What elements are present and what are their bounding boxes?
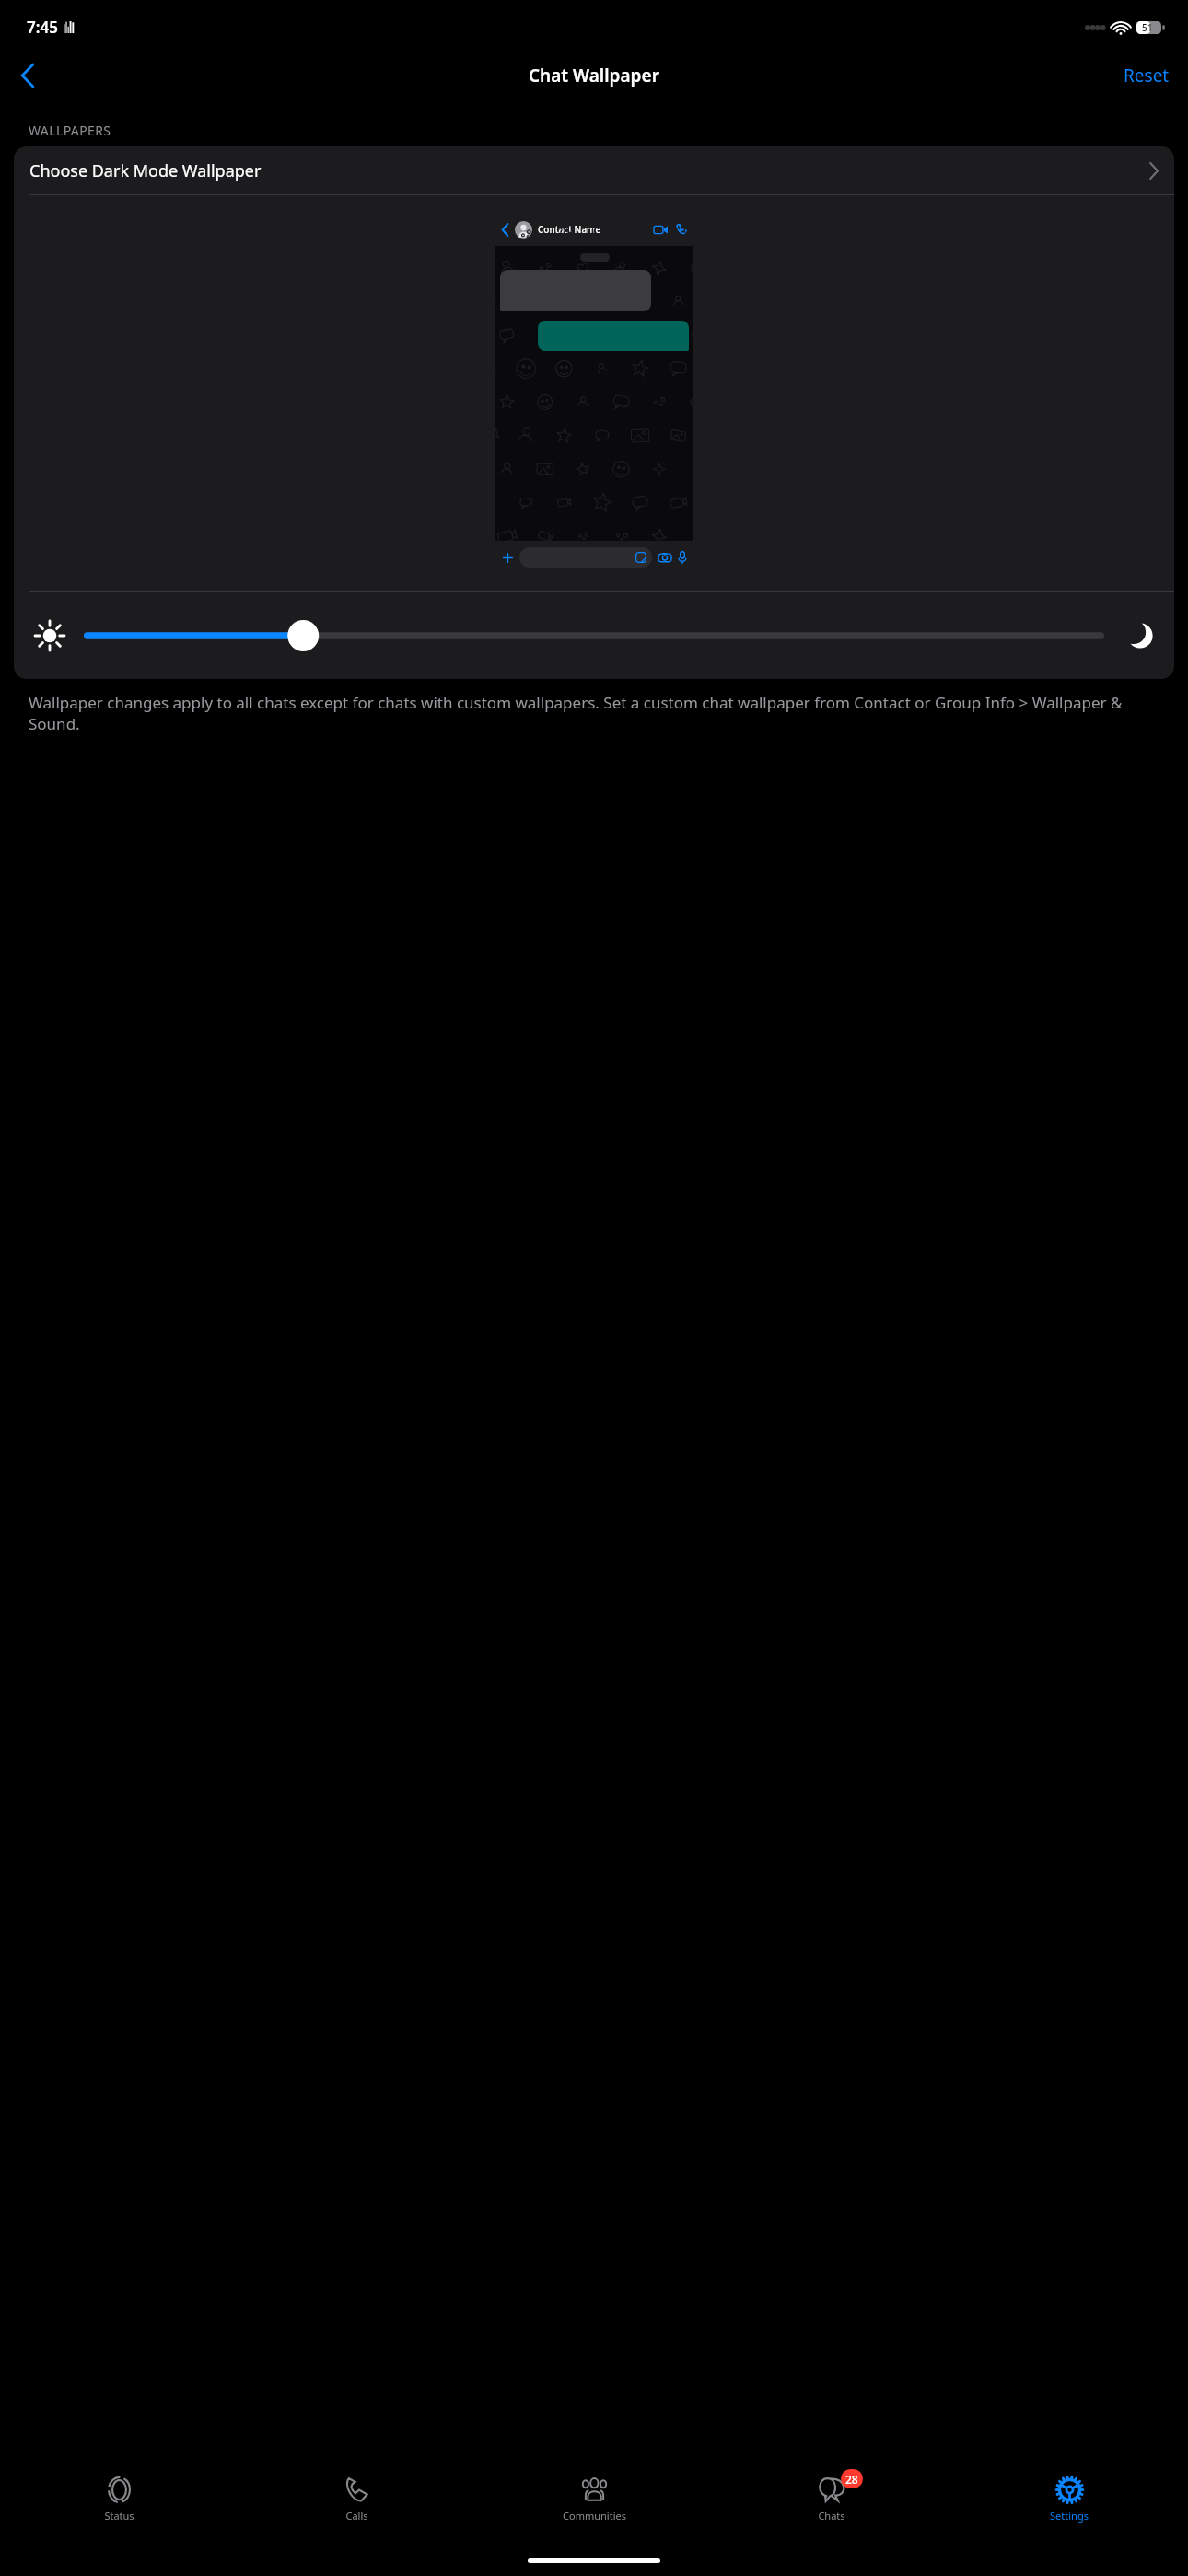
staticText: Status: [104, 2509, 134, 2523]
button[interactable]: Settings: [950, 2467, 1188, 2545]
staticText: Wallpaper changes apply to all chats exc…: [29, 692, 1162, 734]
button[interactable]: Back: [7, 55, 48, 96]
staticText: Communities: [563, 2509, 626, 2523]
staticText: Settings: [1050, 2509, 1089, 2523]
button[interactable]: [84, 620, 1104, 651]
staticText: 7:45: [27, 17, 58, 38]
button[interactable]: Communities: [475, 2467, 713, 2545]
button[interactable]: Status: [0, 2467, 238, 2545]
staticText: Chats: [818, 2509, 845, 2523]
staticText: Calls: [345, 2509, 368, 2523]
staticText: Reset: [1124, 64, 1170, 88]
staticText: Choose Dark Mode Wallpaper: [29, 159, 262, 182]
button[interactable]: Choose Dark Mode Wallpaper: [14, 146, 1174, 194]
staticText: Contact Name: [538, 223, 601, 236]
staticText: Chat Wallpaper: [529, 64, 659, 88]
button[interactable]: 28: [713, 2467, 950, 2545]
button[interactable]: Calls: [238, 2467, 475, 2545]
staticText: WALLPAPERS: [29, 122, 111, 139]
staticText: 51: [1142, 21, 1153, 34]
button[interactable]: Reset: [1124, 64, 1170, 88]
staticText: 28: [845, 2472, 858, 2487]
